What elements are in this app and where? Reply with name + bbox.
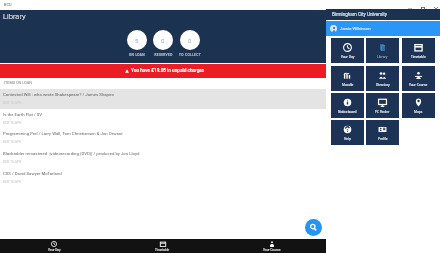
staticText: DUE 16 APR: [3, 140, 22, 144]
button[interactable]: Directory: [366, 66, 399, 91]
staticText: Library: [3, 12, 26, 21]
staticText: Moodle: [342, 83, 354, 87]
staticText: Profile: [378, 137, 388, 141]
button[interactable]: CSS / David Sawyer McFarland: [0, 168, 326, 188]
staticText: DUE 16 APR: [3, 180, 22, 184]
staticText: Timetable: [155, 248, 170, 252]
button[interactable]: Library: [366, 38, 399, 63]
button[interactable]: Is the Earth Flat / SV: [0, 109, 326, 129]
staticText: ON LOAN: [129, 53, 145, 57]
staticText: Your Day: [341, 55, 355, 59]
staticText: Jamie Wilkinson: [340, 26, 371, 31]
staticText: 5: [135, 37, 139, 44]
staticText: Help: [344, 137, 351, 141]
staticText: Library: [377, 55, 388, 59]
button[interactable]: Profile: [366, 120, 399, 145]
staticText: PC Finder: [375, 110, 390, 114]
button[interactable]: Timetable: [402, 38, 435, 63]
staticText: Maps: [414, 110, 423, 114]
staticText: CSS / David Sawyer McFarland: [3, 171, 62, 176]
staticText: Your Course: [409, 83, 428, 87]
button[interactable]: PC Finder: [366, 93, 399, 118]
staticText: TO COLLECT: [179, 53, 201, 57]
button[interactable]: Search: [305, 219, 322, 236]
button[interactable]: Moodle: [331, 66, 364, 91]
button[interactable]: Help: [331, 120, 364, 145]
staticText: Birmingham City University: [332, 12, 387, 17]
staticText: BCU: [4, 2, 12, 6]
button[interactable]: Maximize: [419, 5, 427, 13]
staticText: Contested Will : who wrote Shakespeare? …: [3, 92, 114, 97]
staticText: DUE 16 APR: [3, 101, 22, 105]
button[interactable]: Your Course: [402, 66, 435, 91]
staticText: Noticeboard: [338, 110, 357, 114]
button[interactable]: Programming Perl / Larry Wall, Tom Chris…: [0, 128, 326, 148]
button[interactable]: Contested Will : who wrote Shakespeare? …: [0, 89, 326, 109]
button[interactable]: Your Day: [0, 239, 108, 253]
button[interactable]: Minimize: [406, 5, 414, 13]
staticText: Programming Perl / Larry Wall, Tom Chris…: [3, 131, 123, 136]
button[interactable]: 5: [127, 30, 147, 50]
staticText: Your Day: [48, 248, 61, 252]
staticText: RESERVED: [154, 53, 173, 57]
staticText: Is the Earth Flat / SV: [3, 112, 43, 117]
button[interactable]: Noticeboard: [331, 93, 364, 118]
staticText: Your Course: [263, 248, 281, 252]
staticText: You have £19.05 in unpaid charges: [131, 68, 205, 74]
button[interactable]: Maps: [402, 93, 435, 118]
button[interactable]: 0: [153, 30, 173, 50]
button[interactable]: 0: [180, 30, 200, 50]
staticText: DUE 16 APR: [3, 160, 22, 164]
button[interactable]: Close: [432, 5, 440, 13]
button[interactable]: Timetable: [108, 239, 217, 253]
staticText: 0: [161, 37, 165, 44]
staticText: DUE 16 APR: [3, 121, 22, 125]
button[interactable]: Your Day: [331, 38, 364, 63]
staticText: Directory: [376, 83, 390, 87]
button[interactable]: Blackadder remastered [videorecording (D…: [0, 148, 326, 168]
staticText: 0: [188, 37, 192, 44]
button[interactable]: Your Course: [217, 239, 326, 253]
staticText: Timetable: [411, 55, 426, 59]
staticText: Blackadder remastered [videorecording (D…: [3, 151, 140, 156]
staticText: ITEMS ON LOAN: [4, 80, 32, 84]
